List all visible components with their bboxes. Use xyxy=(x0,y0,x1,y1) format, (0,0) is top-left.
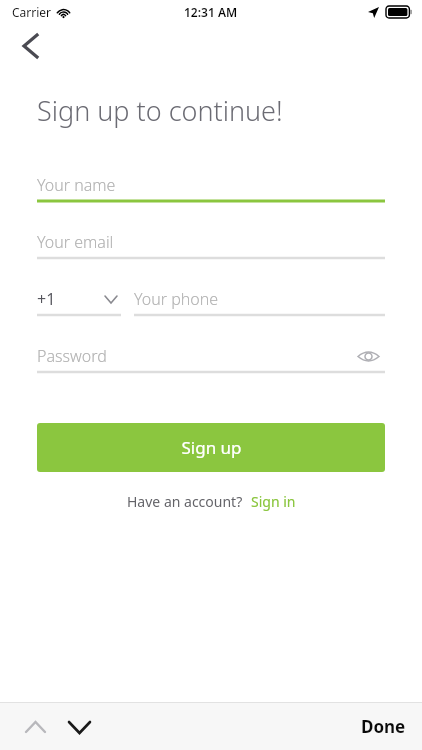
staticText: Carrier xyxy=(12,4,52,20)
button[interactable]: Done xyxy=(361,715,406,738)
staticText: Done xyxy=(361,715,406,738)
button[interactable]: Previous field xyxy=(18,710,52,744)
staticText: Sign up to continue! xyxy=(37,92,283,129)
button[interactable]: Show password xyxy=(351,340,385,372)
button[interactable]: Back xyxy=(10,26,50,66)
button[interactable]: Your name xyxy=(37,169,385,204)
staticText: Sign up xyxy=(181,436,242,459)
button[interactable]: Password xyxy=(37,340,385,372)
staticText: Your name xyxy=(37,174,116,196)
button[interactable]: Your phone xyxy=(134,283,385,318)
button[interactable]: Your email xyxy=(37,226,385,261)
staticText: 12:31 AM xyxy=(184,4,238,20)
button[interactable]: Sign in xyxy=(251,492,296,511)
staticText: Password xyxy=(37,345,107,367)
staticText: Have an account? xyxy=(127,492,243,511)
button[interactable]: Sign up xyxy=(37,423,385,472)
staticText: Your phone xyxy=(134,288,219,310)
staticText: Sign in xyxy=(251,492,296,511)
button[interactable]: +1 xyxy=(37,283,121,318)
button[interactable]: Next field xyxy=(62,710,96,744)
staticText: Your email xyxy=(37,231,114,253)
staticText: +1 xyxy=(37,288,56,310)
